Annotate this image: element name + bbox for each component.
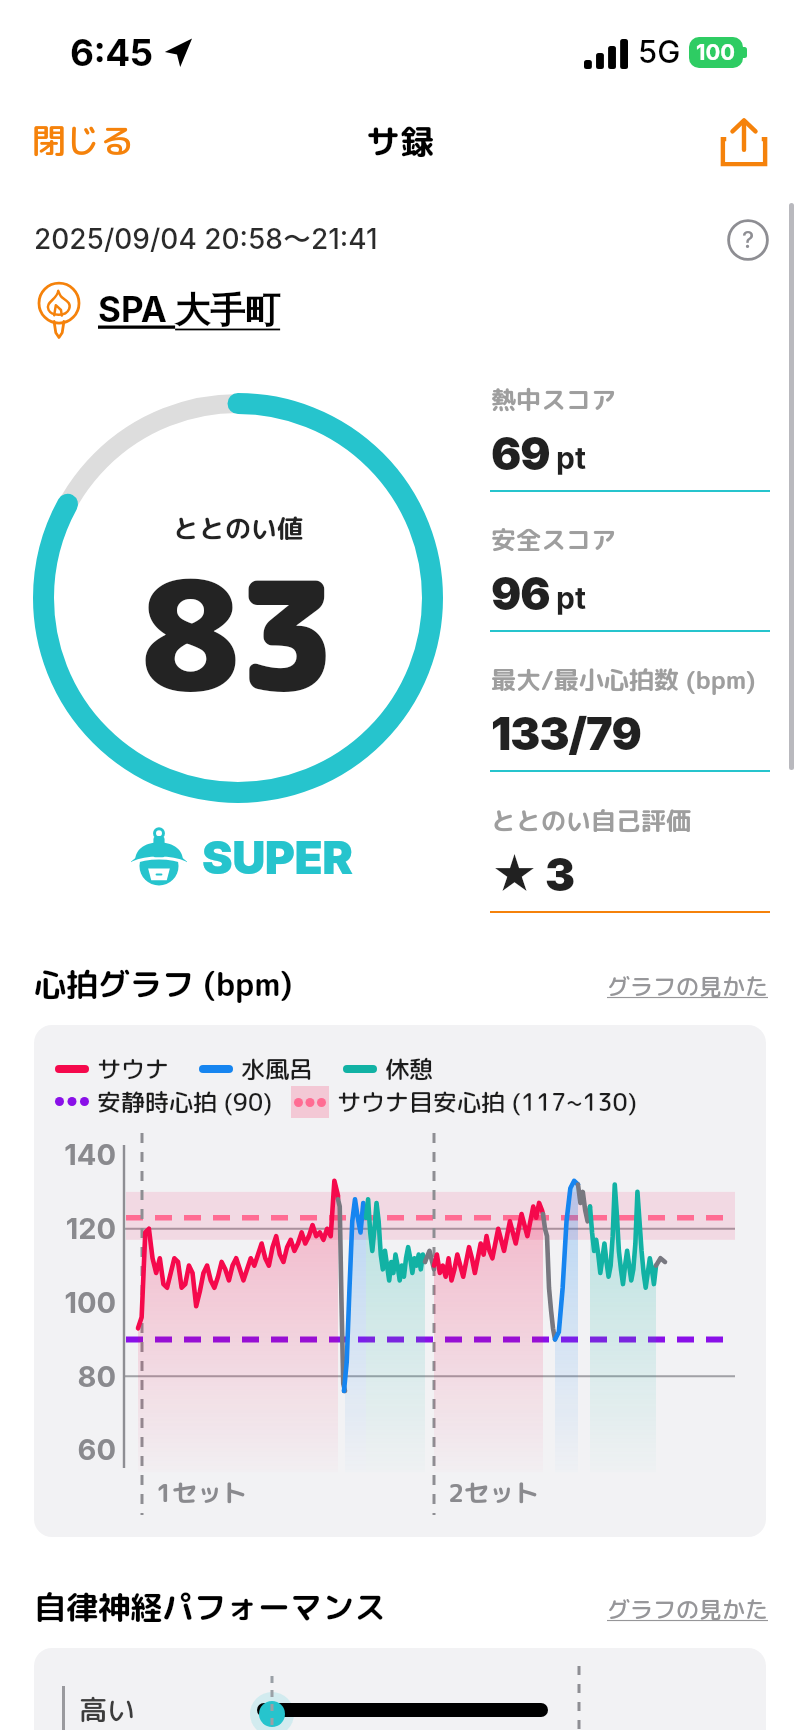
button[interactable]: グラフの見かた <box>607 1593 768 1625</box>
staticText: 120 <box>44 1211 116 1246</box>
staticText: 水風呂 <box>241 1052 313 1085</box>
button[interactable]: Help <box>727 219 769 261</box>
button[interactable]: 閉じる <box>24 110 142 169</box>
staticText: ととのい値 <box>173 510 304 546</box>
staticText: 133/79 <box>491 706 641 760</box>
staticText: 熱中スコア <box>491 382 617 417</box>
staticText: 100 <box>44 1285 116 1320</box>
staticText: サウナ目安心拍 (117~130) <box>337 1085 637 1118</box>
staticText: 2025/09/04 20:58〜21:41 <box>34 222 378 257</box>
button[interactable]: SPA 大手町 <box>30 276 287 338</box>
staticText: 6:45 <box>70 30 153 75</box>
staticText: 140 <box>44 1137 116 1172</box>
staticText: 5G <box>638 33 681 71</box>
staticText: 安全スコア <box>491 522 617 557</box>
staticText: 心拍グラフ (bpm) <box>34 962 293 1007</box>
staticText: 83 <box>141 529 336 738</box>
staticText: 閉じる <box>32 116 134 163</box>
staticText: 100 <box>696 39 736 66</box>
staticText: 最大/最小心拍数 (bpm) <box>491 662 756 697</box>
staticText: 自律神経パフォーマンス <box>34 1585 387 1630</box>
staticText: 2セット <box>448 1475 540 1510</box>
staticText: SPA 大手町 <box>98 288 281 332</box>
button[interactable]: Share <box>720 118 768 166</box>
staticText: 69 <box>491 426 550 480</box>
staticText: サ録 <box>366 117 434 164</box>
staticText: 高い <box>79 1690 136 1729</box>
staticText: 1セット <box>156 1475 248 1510</box>
staticText: SUPER <box>202 829 353 885</box>
staticText: ととのい自己評価 <box>491 803 692 838</box>
staticText: 60 <box>44 1432 116 1467</box>
staticText: pt <box>556 440 586 476</box>
staticText: 96 <box>491 566 550 620</box>
staticText: グラフの見かた <box>607 1593 768 1625</box>
button[interactable]: グラフの見かた <box>607 970 768 1002</box>
staticText: 安静時心拍 (90) <box>97 1085 273 1118</box>
staticText: ? <box>742 226 755 254</box>
staticText: 80 <box>44 1359 116 1394</box>
staticText: pt <box>556 580 586 616</box>
staticText: サウナ <box>97 1052 169 1085</box>
staticText: グラフの見かた <box>607 970 768 1002</box>
staticText: 休憩 <box>385 1052 433 1085</box>
staticText: ★ 3 <box>491 847 575 901</box>
